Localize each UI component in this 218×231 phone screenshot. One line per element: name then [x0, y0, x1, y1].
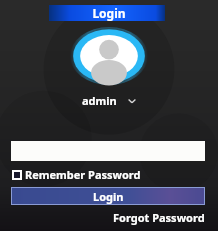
button[interactable]: admin [0, 93, 218, 108]
staticText: Remember Password [25, 167, 141, 182]
staticText: Forgot Password [113, 210, 205, 225]
other: User avatar [70, 27, 148, 85]
button[interactable]: Login [11, 187, 205, 205]
staticText: Login [92, 5, 126, 21]
staticText: Login [93, 189, 124, 204]
staticText: admin [82, 93, 117, 108]
button[interactable]: Remember Password [12, 167, 141, 182]
other: Select user [127, 96, 137, 106]
button[interactable]: Forgot Password [113, 210, 205, 225]
